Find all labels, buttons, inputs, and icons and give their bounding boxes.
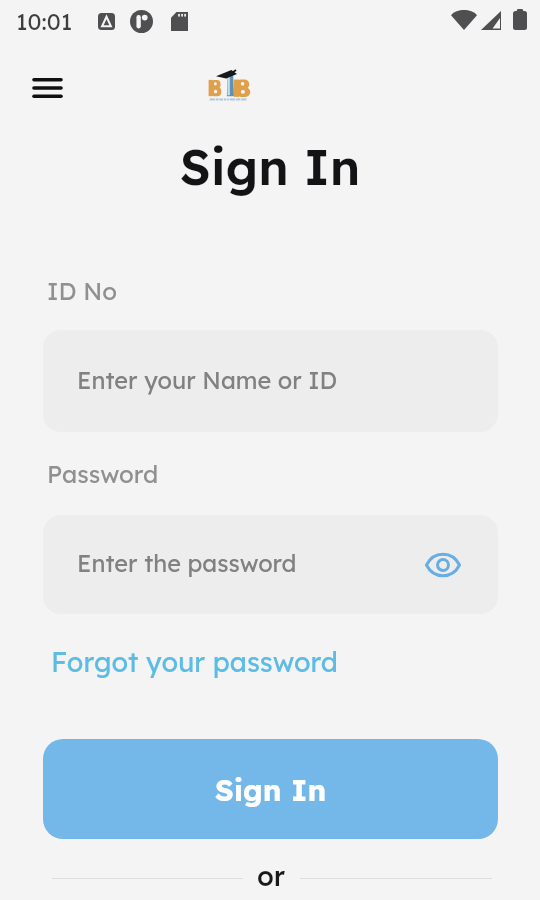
button[interactable]: Forgot your password <box>51 645 338 679</box>
staticText: Enter your Name or ID <box>77 365 338 394</box>
button[interactable]: Show password <box>421 543 465 587</box>
button[interactable]: Enter the password <box>43 515 498 614</box>
staticText: Password <box>47 459 159 489</box>
staticText: Sign In <box>215 771 327 808</box>
button[interactable]: Menu <box>22 68 73 108</box>
button[interactable]: Enter your Name or ID <box>43 330 498 432</box>
button[interactable]: Sign In <box>43 739 498 839</box>
staticText: 10:01 <box>16 7 73 36</box>
staticText: Enter the password <box>77 548 297 577</box>
staticText: or <box>257 859 286 893</box>
staticText: ID No <box>47 276 117 306</box>
staticText: Sign In <box>0 136 540 197</box>
